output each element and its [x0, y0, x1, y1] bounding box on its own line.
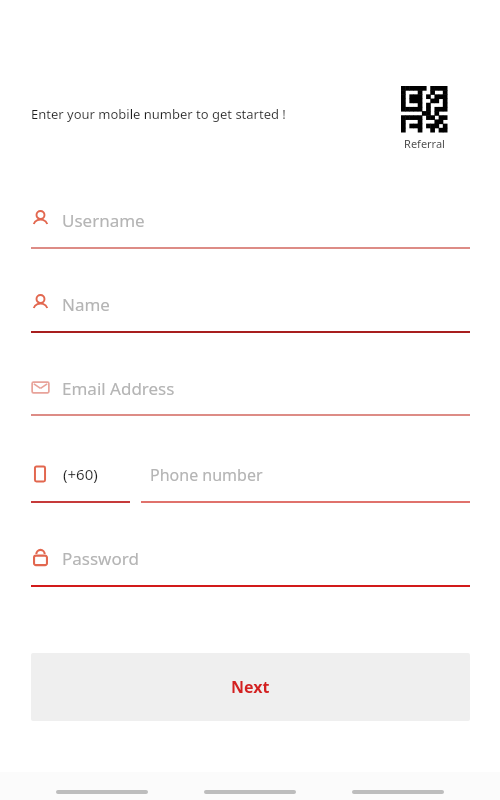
button[interactable]: Navigation [352, 790, 444, 794]
staticText: Username [62, 209, 145, 232]
button[interactable]: Password [0, 543, 500, 585]
button[interactable]: Email Address [0, 373, 500, 415]
staticText: Enter your mobile number to get started … [31, 105, 286, 123]
staticText: Password [62, 547, 139, 570]
staticText: (+60) [63, 464, 98, 484]
button[interactable]: Username [0, 205, 500, 247]
staticText: Referral [404, 136, 445, 151]
staticText: Next [231, 676, 270, 698]
staticText: Name [62, 293, 110, 316]
staticText: Phone number [150, 464, 263, 486]
staticText: Email Address [62, 377, 175, 400]
button[interactable]: Navigation [204, 790, 296, 794]
button[interactable]: Next [31, 653, 470, 721]
button[interactable]: Navigation [56, 790, 148, 794]
button[interactable]: Name [0, 289, 500, 331]
button[interactable]: (+60) [0, 459, 500, 503]
button[interactable]: Referral QR code [395, 82, 453, 155]
